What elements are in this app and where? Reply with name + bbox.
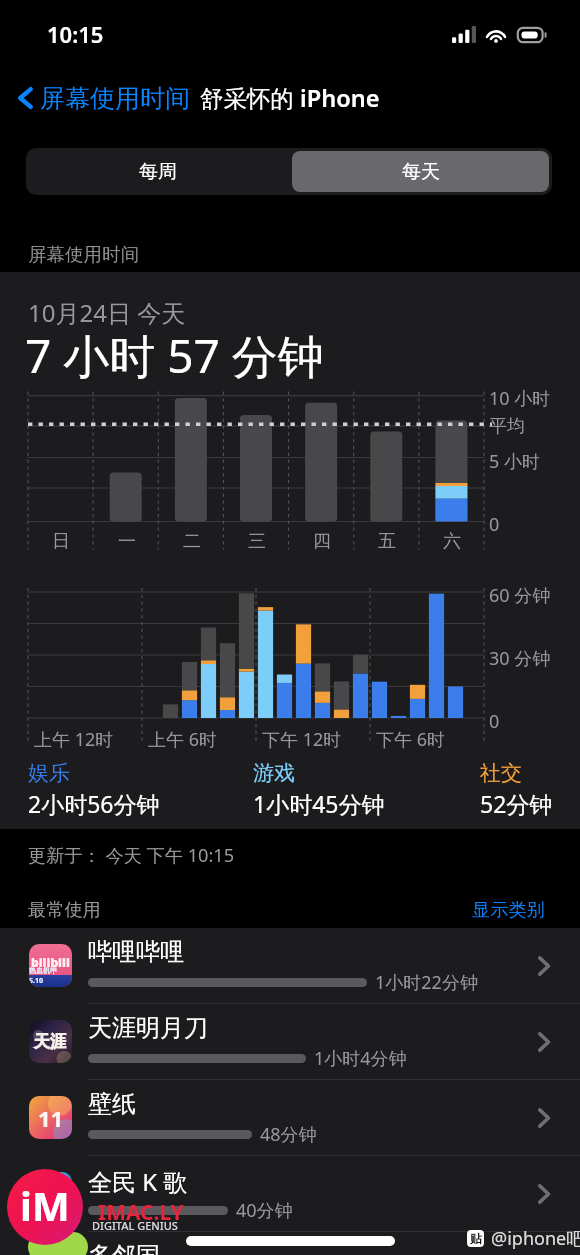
button[interactable]: 显示类别 [466,890,551,929]
staticText: 屏幕使用时间 [28,243,139,266]
button[interactable]: 每周 [26,148,289,195]
staticText: 10:15 [47,19,104,49]
staticText: 每天 [402,160,440,184]
staticText: iM [20,1178,70,1232]
staticText: 显示类别 [472,898,545,921]
staticText: 最常使用 [28,898,101,921]
staticText: 7 小时 57 分钟 [25,324,324,387]
staticText: 多邻国 [88,1241,160,1255]
staticText: DIGITAL GENIUS [92,1218,178,1233]
button[interactable]: 全民 K 歌 [0,1156,580,1232]
staticText: 0 [489,512,500,537]
staticText: 下午 6时 [376,727,445,752]
staticText: 六 [443,530,461,553]
staticText: 贴 [470,1231,482,1246]
staticText: 五 [378,530,396,553]
staticText: 平均 [489,415,525,438]
staticText: 10 小时 [489,386,551,411]
staticText: 舒采怀的 iPhone [200,82,380,114]
button[interactable]: 每天 [292,151,549,192]
button[interactable]: 屏幕使用时间 [12,80,196,116]
staticText: 11 [38,1103,64,1133]
staticText: 40分钟 [236,1198,293,1223]
staticText: IMAC.LY [98,1198,184,1227]
staticText: 哔哩哔哩 [88,937,184,967]
button[interactable]: 多邻国 [0,1232,580,1255]
staticText: 天涯明月刀 [88,1013,208,1043]
staticText: 天涯 [34,1032,66,1052]
staticText: 5 小时 [489,449,540,474]
staticText: 上午 12时 [34,727,114,752]
staticText: 屏幕使用时间 [40,83,190,114]
staticText: 1小时45分钟 [253,788,385,819]
staticText: 娱乐 [28,760,70,786]
staticText: 1小时22分钟 [375,970,478,995]
staticText: 二 [183,530,201,553]
staticText: 更新于： 今天 下午 10:15 [28,843,235,868]
staticText: 社交 [480,760,522,786]
button[interactable]: 天涯 [0,1004,580,1080]
staticText: 30 分钟 [489,646,551,671]
staticText: 全民 K 歌 [88,1165,188,1198]
staticText: 1小时4分钟 [314,1046,407,1071]
staticText: 一 [118,530,136,553]
staticText: bilibili [31,954,70,970]
staticText: 每周 [139,160,177,184]
staticText: 四 [313,530,331,553]
button[interactable]: bilibili [0,928,580,1004]
staticText: 壁纸 [88,1089,136,1119]
staticText: 60 分钟 [489,583,551,608]
staticText: 2小时56分钟 [28,788,160,819]
staticText: 热血机甲 5.10 [29,966,72,985]
staticText: 48分钟 [260,1122,317,1147]
staticText: 三 [248,530,266,553]
staticText: @iphone吧 [491,1226,580,1251]
staticText: 下午 12时 [262,727,342,752]
staticText: 日 [52,530,70,553]
button[interactable]: 11 [0,1080,580,1156]
staticText: 0 [489,709,500,734]
staticText: 上午 6时 [148,727,217,752]
staticText: 52分钟 [480,788,553,819]
staticText: 10月24日 今天 [28,296,186,329]
staticText: 游戏 [253,760,295,786]
